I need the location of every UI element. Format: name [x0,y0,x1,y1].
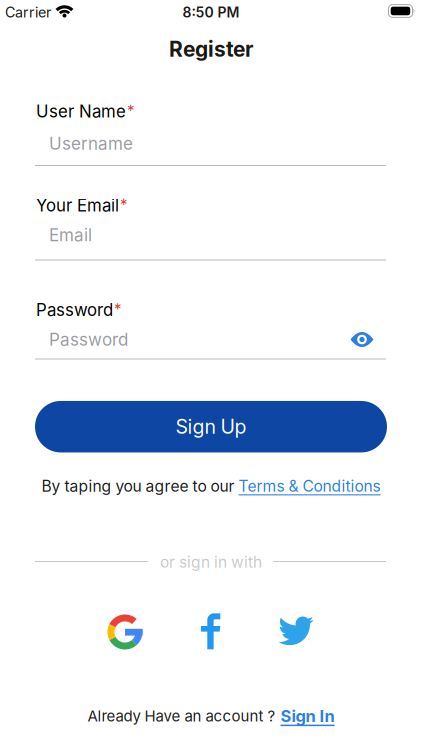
staticText: Sign Up [175,415,246,438]
staticText: Terms & Conditions [238,477,380,495]
staticText: Email [49,225,92,245]
button[interactable]: Sign in with Facebook [201,613,221,650]
button[interactable]: Sign in with Google [107,614,142,649]
staticText: * [127,101,135,119]
staticText: Already Have an account ? [87,707,275,725]
staticText: Register [169,36,253,62]
staticText: Carrier [5,3,51,21]
button[interactable]: Sign Up [35,401,387,452]
staticText: * [120,195,128,213]
button[interactable]: Terms & Conditions [238,477,380,495]
staticText: By taping you agree to our [41,477,238,495]
staticText: User Name [36,101,126,122]
button[interactable]: Show password [350,332,373,347]
staticText: * [114,300,122,318]
staticText: Your Email [36,195,119,216]
button[interactable]: Sign in with Twitter [278,616,313,646]
staticText: Password [36,300,113,320]
staticText: or sign in with [160,553,262,571]
staticText: Username [49,133,133,154]
staticText: Sign In [280,706,334,726]
staticText: Password [49,329,128,350]
button[interactable]: Sign In [280,706,334,726]
staticText: 8:50 PM [182,4,239,21]
